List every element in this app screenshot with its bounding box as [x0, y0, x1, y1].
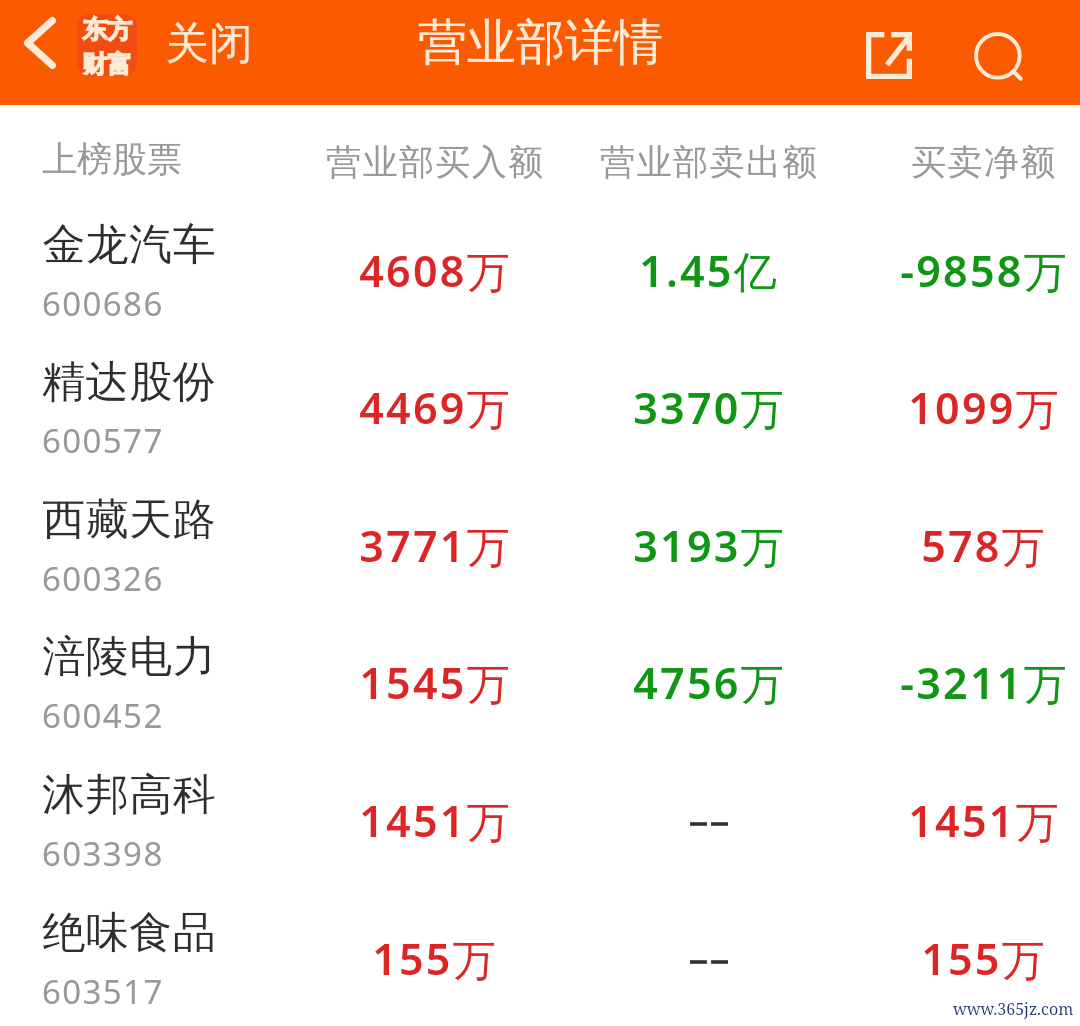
staticText: 1.45亿	[639, 241, 779, 300]
staticText: 600326	[42, 556, 164, 601]
button[interactable]: 精达股份	[0, 339, 1080, 477]
staticText: -3211万	[900, 653, 1069, 712]
button[interactable]: Share	[843, 9, 935, 101]
staticText: 营业部买入额	[326, 140, 545, 184]
staticText: 3193万	[633, 516, 786, 575]
staticText: 155万	[372, 929, 498, 988]
button[interactable]: 绝味食品	[0, 890, 1080, 1026]
staticText: 东方	[82, 14, 132, 45]
staticText: 600452	[42, 693, 164, 738]
staticText: 买卖净额	[911, 140, 1057, 184]
staticText: 578万	[921, 516, 1047, 575]
staticText: 涪陵电力	[42, 630, 216, 684]
staticText: 600686	[42, 281, 164, 326]
button[interactable]: Search	[958, 16, 1046, 104]
staticText: 上榜股票	[42, 137, 182, 181]
staticText: 沐邦高科	[42, 768, 216, 822]
staticText: 1451万	[908, 791, 1061, 850]
button[interactable]: 关闭	[165, 17, 253, 71]
button[interactable]: 涪陵电力	[0, 614, 1080, 752]
button[interactable]: 西藏天路	[0, 477, 1080, 615]
staticText: 1545万	[359, 653, 512, 712]
staticText: 4756万	[633, 653, 786, 712]
staticText: 155万	[921, 929, 1047, 988]
staticText: 金龙汽车	[42, 218, 216, 272]
button[interactable]: Back	[2, 0, 78, 86]
staticText: 营业部卖出额	[600, 140, 819, 184]
staticText: 绝味食品	[42, 906, 216, 960]
staticText: 4608万	[359, 241, 512, 300]
staticText: 1451万	[359, 791, 512, 850]
staticText: 营业部详情	[418, 12, 663, 74]
staticText: -9858万	[900, 241, 1069, 300]
button[interactable]: 沐邦高科	[0, 752, 1080, 890]
staticText: 关闭	[165, 17, 253, 71]
button[interactable]: 上榜股票	[42, 137, 182, 181]
staticText: 600577	[42, 418, 164, 463]
staticText: 精达股份	[42, 355, 216, 409]
staticText: 603398	[42, 831, 164, 876]
staticText: 财富	[82, 49, 132, 76]
staticText: 1099万	[908, 378, 1061, 437]
staticText: 3370万	[633, 378, 786, 437]
staticText: 603517	[42, 969, 164, 1014]
staticText: 3771万	[359, 516, 512, 575]
button[interactable]: 东方财富	[77, 14, 137, 76]
button[interactable]: 金龙汽车	[0, 202, 1080, 340]
staticText: 西藏天路	[42, 493, 216, 547]
staticText: 4469万	[359, 378, 512, 437]
staticText: www.365jz.com	[953, 998, 1074, 1020]
